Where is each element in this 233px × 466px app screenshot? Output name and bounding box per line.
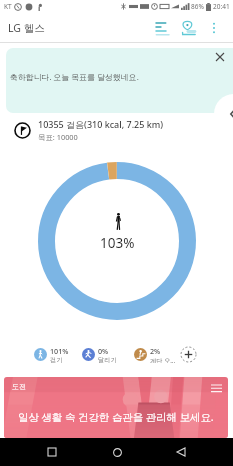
staticText: 달리기	[98, 356, 117, 363]
button[interactable]: 축하합니다. 오늘 목표를 달성했네요.	[6, 48, 233, 113]
staticText: 0%	[98, 346, 109, 356]
button[interactable]: List	[149, 15, 175, 41]
staticText: LG 헬스	[8, 21, 45, 35]
button[interactable]: More options	[201, 15, 227, 41]
staticText: 계단 오...	[150, 356, 176, 363]
button[interactable]: 0%	[82, 346, 117, 363]
staticText: 86%	[191, 2, 204, 11]
button[interactable]: Back	[169, 440, 193, 464]
button[interactable]: 101%	[34, 346, 69, 363]
staticText: 20:41	[213, 2, 230, 11]
staticText: KT	[4, 2, 12, 11]
staticText: 103%	[100, 234, 135, 252]
button[interactable]: 10355 걸음(310 kcal, 7.25 km)	[14, 115, 233, 145]
button[interactable]: Add activity	[180, 346, 197, 363]
button[interactable]: Map	[175, 15, 201, 41]
staticText: 101%	[50, 346, 69, 356]
staticText: 10355 걸음(310 kcal, 7.25 km)	[38, 118, 164, 130]
button[interactable]: Home	[105, 440, 129, 464]
staticText: 2%	[150, 346, 161, 356]
button[interactable]: 도전	[4, 377, 228, 438]
staticText: 일상 생활 속 건강한 습관을 관리해 보세요.	[18, 410, 214, 424]
button[interactable]: Previous day	[214, 94, 233, 134]
button[interactable]: 2%	[134, 346, 176, 363]
staticText: 도전	[12, 382, 26, 391]
button[interactable]: Recent apps	[40, 440, 64, 464]
button[interactable]: Menu	[209, 381, 223, 395]
button[interactable]: Close	[213, 50, 227, 64]
staticText: 목표: 10000	[38, 132, 78, 142]
staticText: 걷기	[50, 356, 63, 363]
staticText: 축하합니다. 오늘 목표를 달성했네요.	[10, 72, 139, 83]
